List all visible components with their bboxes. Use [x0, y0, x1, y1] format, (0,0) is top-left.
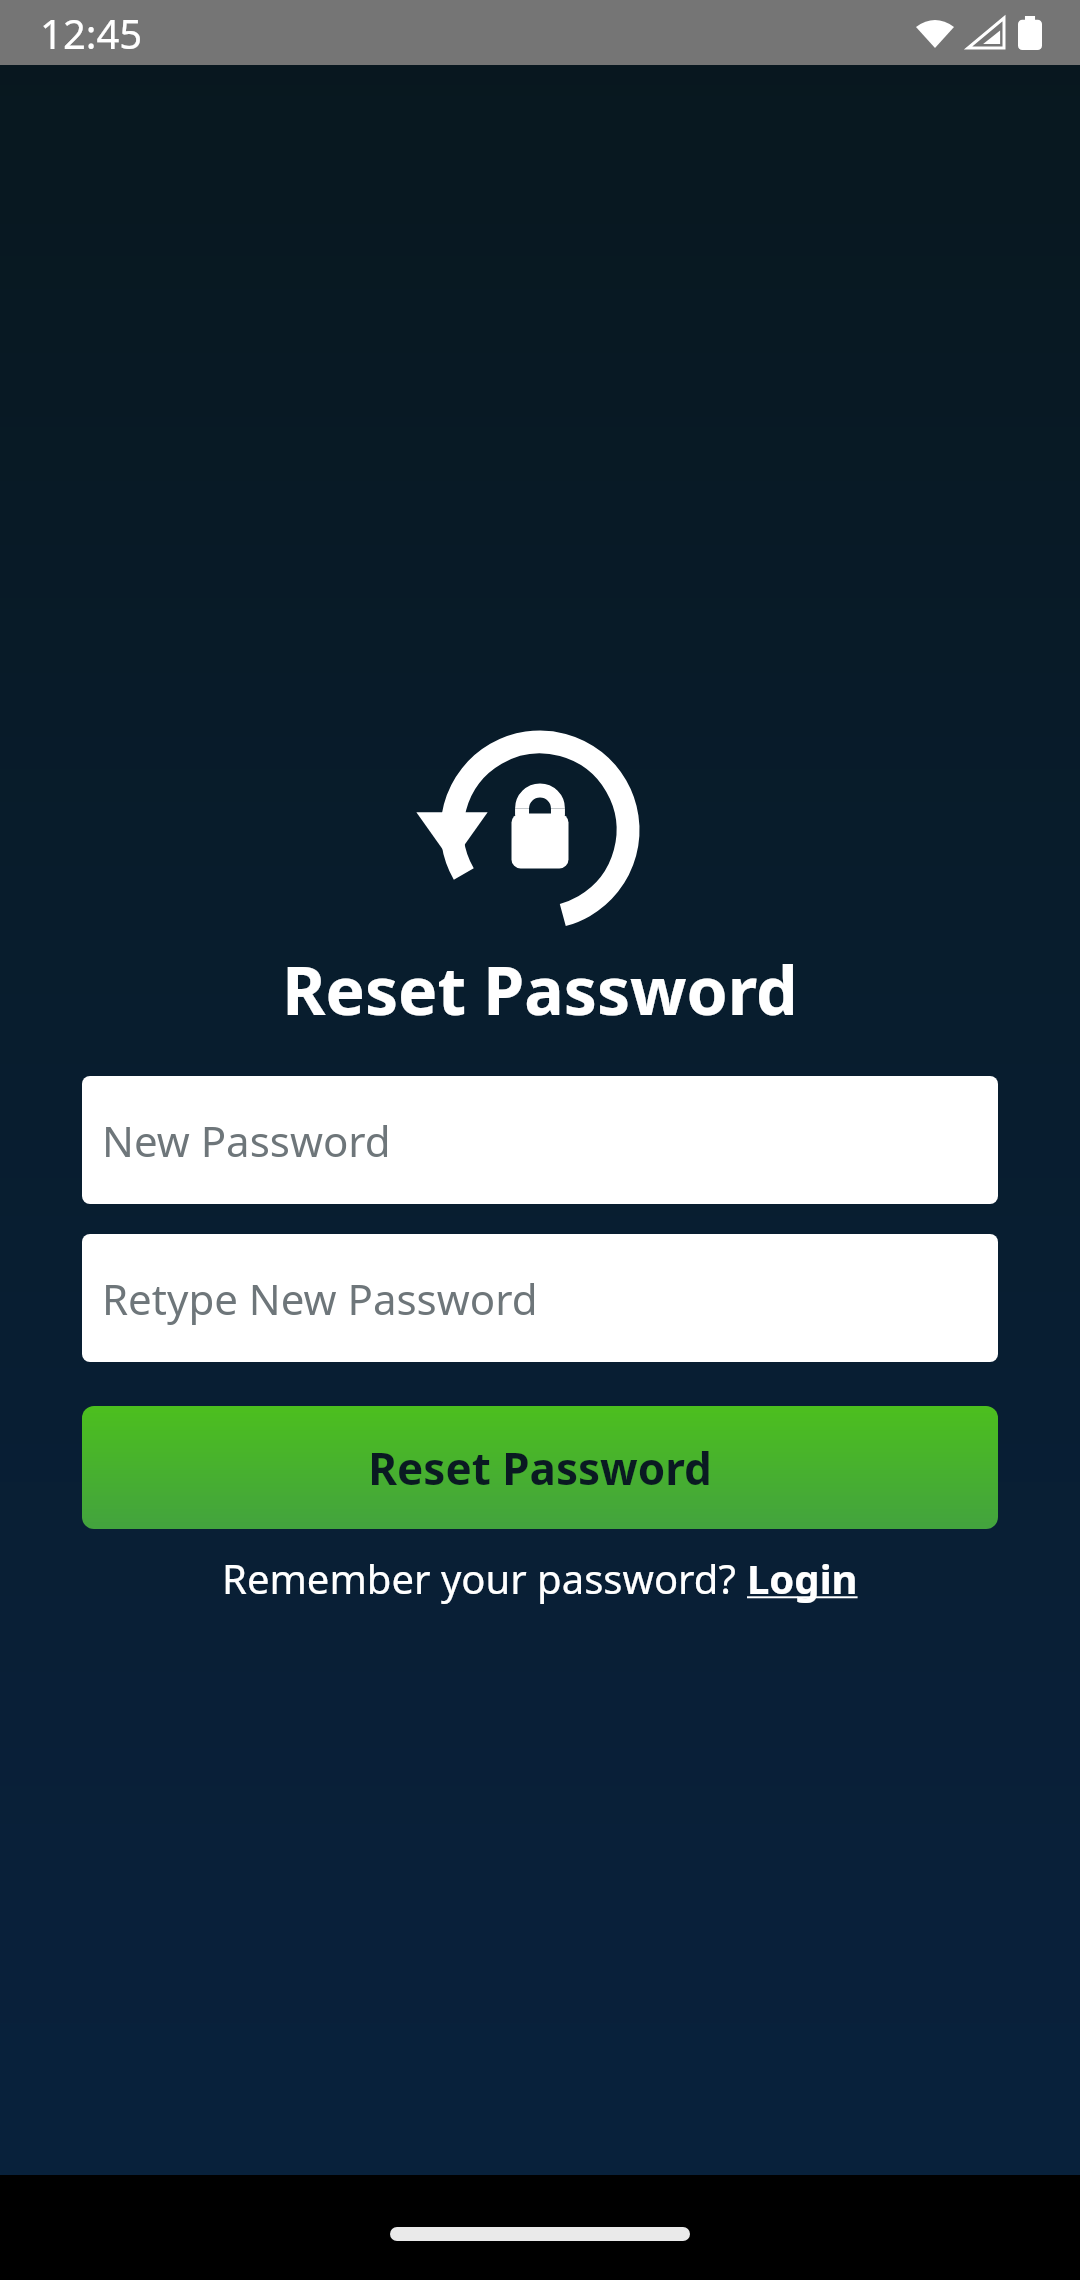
staticText: Reset Password	[282, 944, 798, 1034]
button[interactable]: Reset Password	[82, 1406, 998, 1529]
staticText: New Password	[102, 1112, 391, 1169]
staticText: Reset Password	[368, 1438, 712, 1498]
staticText: 12:45	[40, 6, 143, 60]
staticText: Remember your password?	[222, 1551, 747, 1605]
staticText: Retype New Password	[102, 1270, 538, 1327]
other: Home gesture bar	[390, 2227, 690, 2241]
button[interactable]: Login	[747, 1551, 858, 1605]
button[interactable]: New Password	[82, 1076, 998, 1204]
staticText: Login	[747, 1551, 858, 1605]
button[interactable]: Retype New Password	[82, 1234, 998, 1362]
